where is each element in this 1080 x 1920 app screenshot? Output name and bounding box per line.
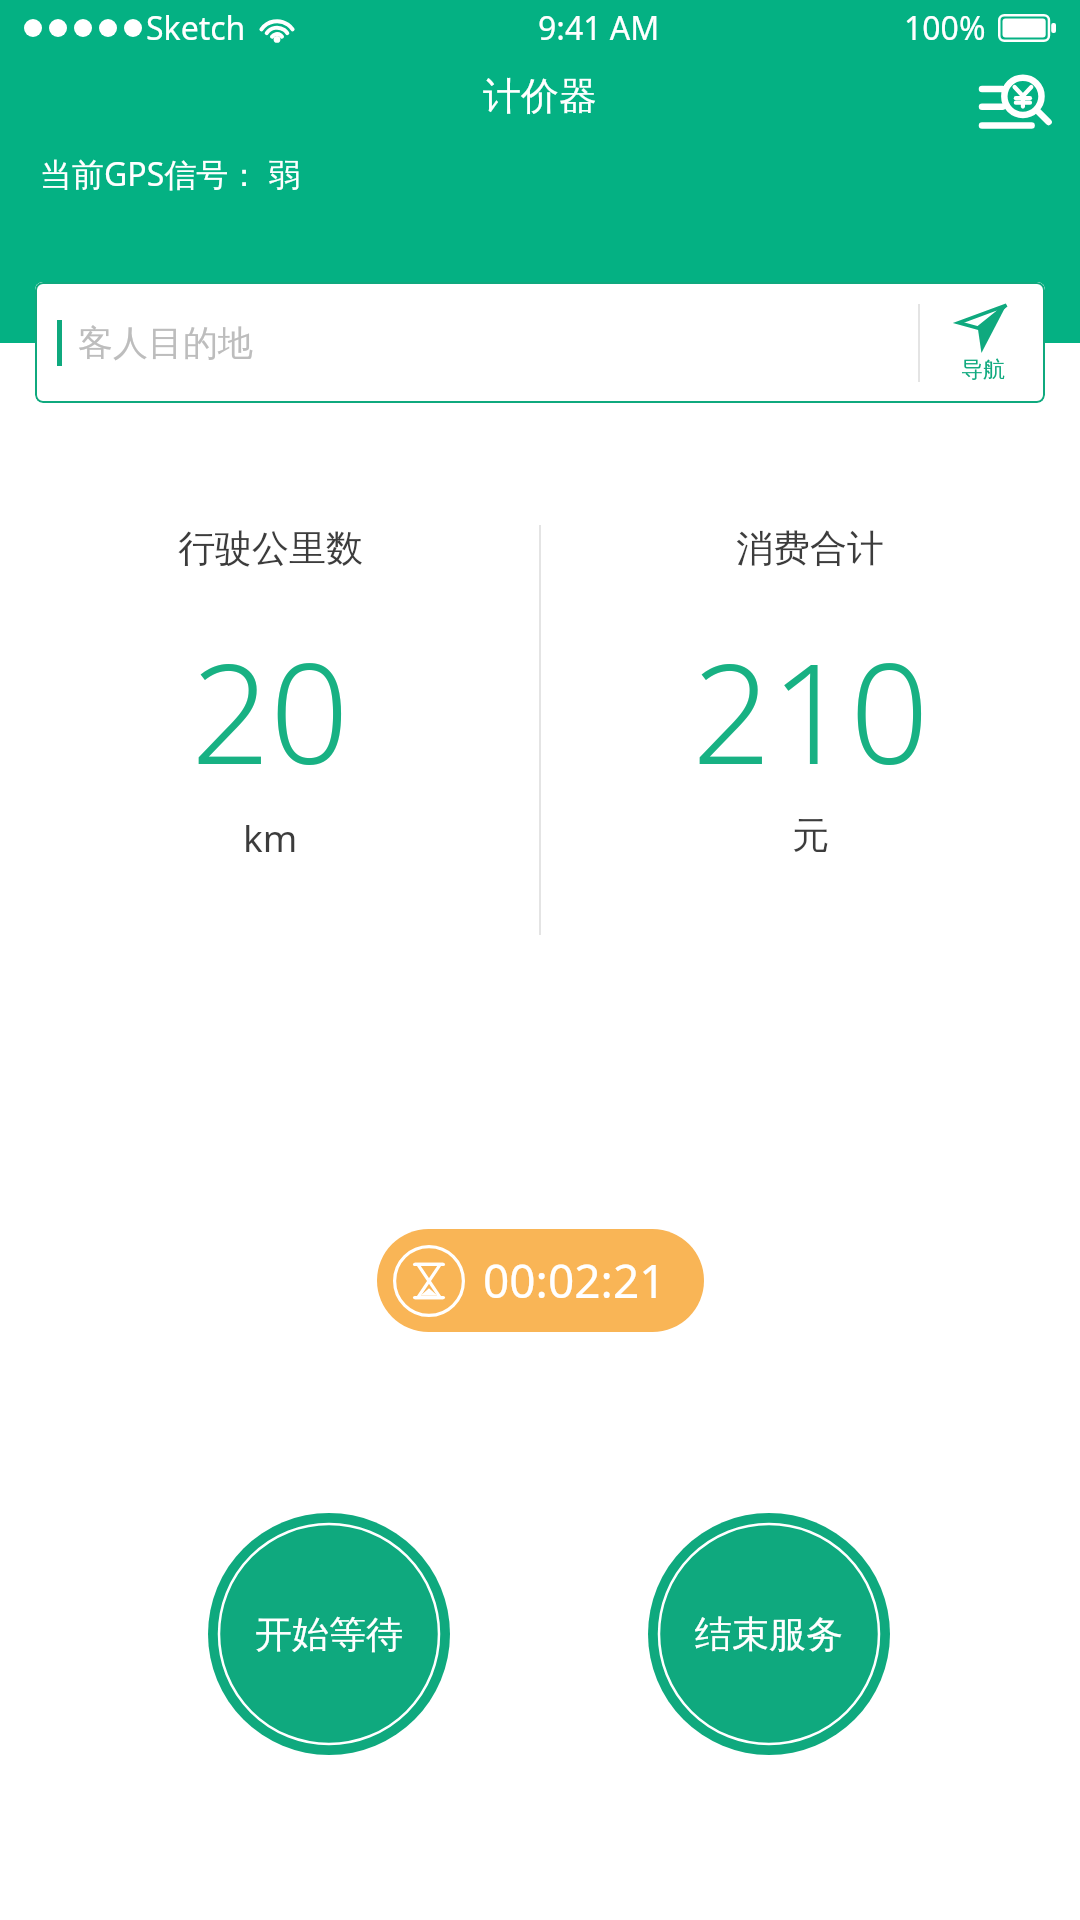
button[interactable]: 查询计价记录 — [970, 62, 1056, 148]
staticText: 行驶公里数 — [178, 525, 363, 572]
button[interactable]: 导航 — [920, 282, 1045, 403]
button[interactable]: 客人目的地 — [35, 282, 918, 403]
button[interactable]: 开始等待 — [208, 1513, 450, 1755]
staticText: 导航 — [961, 356, 1005, 384]
staticText: Sketch — [146, 6, 246, 50]
staticText: 开始等待 — [255, 1611, 403, 1658]
staticText: 20 — [191, 616, 349, 804]
staticText: 客人目的地 — [78, 321, 253, 365]
button[interactable]: 00:02:21 — [377, 1229, 704, 1332]
staticText: km — [243, 812, 298, 862]
button[interactable]: 消费合计 — [540, 525, 1080, 859]
staticText: 100% — [904, 6, 986, 50]
button[interactable]: 结束服务 — [648, 1513, 890, 1755]
staticText: 结束服务 — [695, 1611, 843, 1658]
staticText: 消费合计 — [736, 525, 884, 572]
staticText: 210 — [692, 616, 929, 804]
button[interactable]: 行驶公里数 — [0, 525, 540, 862]
staticText: 计价器 — [483, 72, 597, 120]
staticText: 元 — [792, 812, 829, 859]
staticText: 9:41 AM — [538, 6, 660, 50]
staticText: 当前GPS信号： 弱 — [40, 152, 301, 196]
staticText: 00:02:21 — [483, 1249, 666, 1312]
